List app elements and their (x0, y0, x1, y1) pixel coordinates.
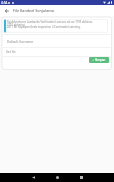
staticText: Raj Adventures Lombardo Verification Lic… (7, 20, 93, 24)
button[interactable]: Back (0, 5, 13, 16)
button[interactable]: Recent apps (69, 173, 93, 182)
staticText: 4:54 (1, 1, 8, 5)
staticText: Default Surname (7, 39, 34, 43)
staticText: 2710 abherinj (7, 23, 25, 27)
staticText: Simpan (95, 58, 106, 62)
staticText: Set So (6, 49, 16, 53)
staticText: 2411 Mr Saydipan Gedo imposition 2 Contr… (7, 25, 81, 29)
button[interactable]: Back (21, 173, 45, 182)
staticText: File Kandeel Sonjulama (13, 8, 54, 13)
button[interactable]: Simpan (89, 57, 109, 63)
button[interactable]: Home (45, 173, 69, 182)
